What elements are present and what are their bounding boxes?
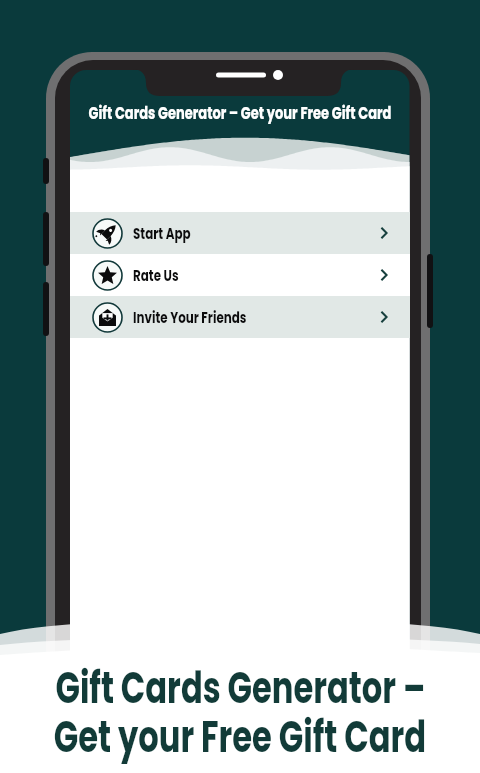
other: Invite Your Friends [92,302,123,333]
staticText: Gift Cards Generator – Get your Free Gif… [88,101,391,125]
staticText: Start App [133,222,191,245]
staticText: Get your Free Gift Card [54,706,426,767]
staticText: Invite Your Friends [133,306,247,329]
other: Rate Us [92,260,123,291]
button[interactable]: Rate Us [70,254,410,296]
button[interactable]: Start App [70,212,410,254]
staticText: Gift Cards Generator – [55,657,426,718]
button[interactable]: Invite Your Friends [70,296,410,338]
staticText: Rate Us [133,264,179,287]
other: Start App [92,218,123,249]
